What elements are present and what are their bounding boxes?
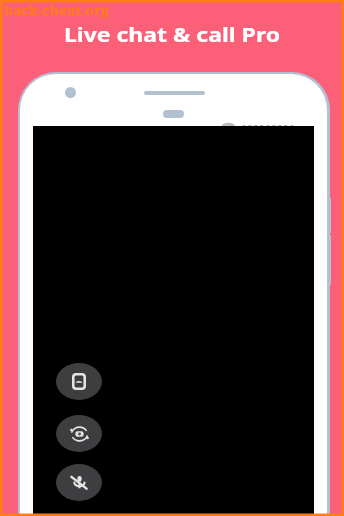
button[interactable]: Switch camera bbox=[56, 415, 102, 452]
button[interactable]: Mute microphone bbox=[56, 464, 102, 501]
staticText: hack-cheat.org bbox=[4, 2, 110, 18]
staticText: Live chat & call Pro bbox=[0, 21, 344, 46]
button[interactable]: Share screen bbox=[56, 363, 102, 400]
